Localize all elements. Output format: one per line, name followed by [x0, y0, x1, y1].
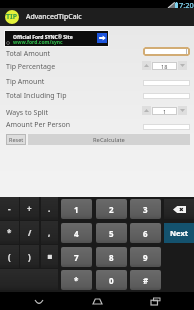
- button[interactable]: Increase: [142, 61, 151, 70]
- staticText: 5: [109, 228, 114, 239]
- staticText: www.ford.com/sync: [13, 39, 63, 46]
- staticText: Amount Per Person: [6, 120, 71, 130]
- staticText: Tip Percentage: [6, 62, 56, 72]
- button[interactable]: Increase: [142, 106, 151, 115]
- staticText: 7: [74, 252, 79, 263]
- staticText: Ways to Split: [6, 108, 48, 118]
- staticText: Tip Amount: [6, 77, 45, 87]
- button[interactable]: 2: [96, 199, 127, 219]
- staticText: AdvancedTipCalc: [26, 12, 82, 22]
- button[interactable]: #: [130, 270, 161, 290]
- button[interactable]: Decrease: [178, 61, 187, 70]
- button[interactable]: ): [20, 245, 39, 268]
- button[interactable]: [143, 93, 190, 99]
- button[interactable]: 6: [130, 223, 161, 243]
- staticText: +: [27, 203, 32, 214]
- button[interactable]: [143, 47, 190, 56]
- button[interactable]: *: [0, 221, 19, 244]
- staticText: *: [7, 227, 12, 238]
- staticText: -: [8, 203, 11, 214]
- button[interactable]: -: [0, 197, 19, 220]
- staticText: Total Including Tip: [6, 91, 67, 101]
- staticText: ReCalculate: [93, 136, 125, 144]
- staticText: 1: [163, 108, 167, 115]
- button[interactable]: /: [20, 221, 39, 244]
- button[interactable]: ▪: [41, 245, 58, 268]
- button[interactable]: Recents: [136, 292, 174, 310]
- button[interactable]: ReCalculate: [28, 134, 190, 145]
- staticText: 6: [143, 228, 148, 239]
- staticText: ,: [48, 227, 51, 238]
- button[interactable]: 0: [96, 270, 127, 290]
- staticText: Next: [170, 228, 189, 238]
- button[interactable]: Decrease: [178, 106, 187, 115]
- staticText: /: [28, 227, 32, 238]
- staticText: 8: [109, 252, 114, 263]
- staticText: 7:20: [179, 0, 194, 8]
- staticText: .: [48, 203, 51, 214]
- button[interactable]: 8: [96, 247, 127, 267]
- staticText: 0: [109, 275, 114, 286]
- button[interactable]: Next: [164, 223, 194, 243]
- staticText: 4: [74, 228, 79, 239]
- button[interactable]: Space: [0, 269, 58, 290]
- button[interactable]: 4: [61, 223, 92, 243]
- button[interactable]: 3: [130, 199, 161, 219]
- button[interactable]: 7: [61, 247, 92, 267]
- button[interactable]: [143, 124, 190, 130]
- button[interactable]: [143, 80, 190, 86]
- staticText: 9: [143, 252, 148, 263]
- staticText: 3: [143, 204, 148, 215]
- staticText: TIP: [6, 12, 18, 22]
- button[interactable]: (: [0, 245, 19, 268]
- button[interactable]: Home: [78, 292, 116, 310]
- button[interactable]: +: [20, 197, 39, 220]
- button[interactable]: Open ad: [97, 33, 107, 43]
- button[interactable]: 5: [96, 223, 127, 243]
- button[interactable]: Reset: [6, 134, 26, 145]
- staticText: Reset: [9, 136, 24, 143]
- button[interactable]: Official Ford SYNC® Site: [5, 31, 108, 46]
- staticText: Official Ford SYNC® Site: [13, 34, 73, 41]
- staticText: 18: [161, 63, 168, 70]
- staticText: Total Amount: [6, 49, 51, 59]
- button[interactable]: 1: [152, 107, 177, 115]
- button[interactable]: *: [61, 270, 92, 290]
- staticText: (: [8, 251, 11, 262]
- button[interactable]: ,: [41, 221, 58, 244]
- button[interactable]: 1: [61, 199, 92, 219]
- button[interactable]: .: [41, 197, 58, 220]
- button[interactable]: Hide keyboard: [20, 292, 58, 310]
- button[interactable]: 18: [152, 62, 177, 70]
- staticText: 1: [74, 204, 79, 215]
- button[interactable]: 9: [130, 247, 161, 267]
- staticText: *: [74, 275, 79, 286]
- button[interactable]: Backspace: [164, 199, 194, 219]
- button[interactable]: TIP: [0, 8, 194, 26]
- staticText: 2: [109, 204, 114, 215]
- staticText: #: [143, 275, 149, 286]
- staticText: ▪: [47, 252, 53, 261]
- staticText: ): [28, 251, 31, 262]
